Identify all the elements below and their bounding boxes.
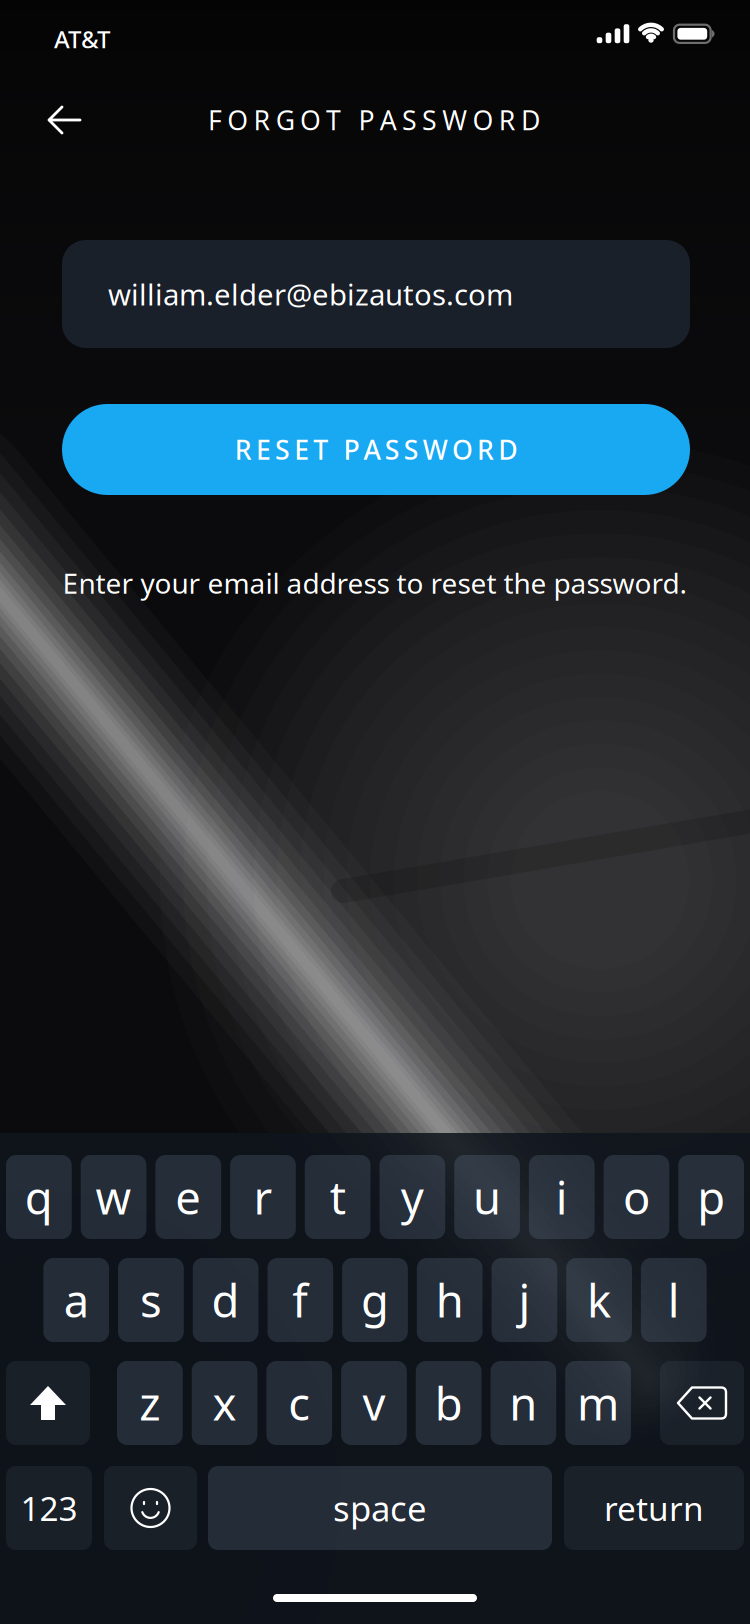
staticText: j (518, 1270, 530, 1330)
button[interactable]: space (208, 1466, 552, 1550)
staticText: T (313, 432, 328, 467)
staticText: a (64, 1270, 89, 1330)
staticText: k (587, 1270, 611, 1330)
staticText: R (499, 102, 516, 138)
staticText: E (256, 432, 271, 467)
button[interactable]: t (305, 1155, 370, 1239)
button[interactable]: a (43, 1258, 109, 1342)
button[interactable]: g (342, 1258, 408, 1342)
button[interactable]: Emoji (104, 1466, 197, 1550)
staticText: P (358, 102, 374, 138)
staticText: l (668, 1270, 680, 1330)
button[interactable]: w (81, 1155, 146, 1239)
staticText: G (276, 102, 295, 138)
staticText: A (363, 432, 380, 467)
staticText: 123 (20, 1486, 77, 1530)
staticText: O (472, 102, 493, 138)
button[interactable]: Shift (6, 1361, 90, 1445)
staticText: n (509, 1373, 537, 1433)
staticText: y (401, 1167, 424, 1227)
staticText: d (212, 1270, 240, 1330)
staticText: z (139, 1373, 160, 1433)
staticText: q (25, 1167, 53, 1227)
staticText: g (361, 1270, 389, 1330)
staticText: W (423, 432, 448, 467)
staticText: return (604, 1486, 704, 1530)
staticText: w (96, 1167, 132, 1227)
button[interactable]: d (193, 1258, 258, 1342)
staticText: p (697, 1167, 725, 1227)
staticText: E (294, 432, 309, 467)
staticText: S (402, 102, 417, 138)
staticText: s (140, 1270, 162, 1330)
staticText: O (452, 432, 473, 467)
staticText: T (326, 102, 341, 138)
staticText: D (498, 432, 517, 467)
button[interactable]: o (604, 1155, 669, 1239)
button[interactable]: c (266, 1361, 332, 1445)
staticText: x (213, 1373, 237, 1433)
staticText: S (404, 432, 419, 467)
button[interactable]: j (492, 1258, 557, 1342)
button[interactable]: q (6, 1155, 72, 1239)
staticText: h (436, 1270, 464, 1330)
staticText: o (623, 1167, 650, 1227)
button[interactable]: x (192, 1361, 257, 1445)
staticText: e (175, 1167, 201, 1227)
button[interactable]: return (564, 1466, 744, 1550)
staticText: r (253, 1167, 272, 1227)
staticText: D (521, 102, 540, 138)
button[interactable]: h (417, 1258, 482, 1342)
button[interactable]: u (454, 1155, 520, 1239)
button[interactable]: i (529, 1155, 595, 1239)
staticText: O (300, 102, 321, 138)
button[interactable]: Delete (660, 1361, 744, 1445)
staticText: S (385, 432, 400, 467)
button[interactable]: k (566, 1258, 632, 1342)
staticText: i (556, 1167, 568, 1227)
button[interactable]: william.elder@ebizautos.com (62, 240, 690, 348)
staticText: R (235, 432, 252, 467)
staticText: P (343, 432, 359, 467)
staticText: W (442, 102, 467, 138)
button[interactable]: Back (35, 91, 94, 149)
staticText: space (333, 1485, 427, 1531)
button[interactable]: Numbers (6, 1466, 92, 1550)
staticText: f (292, 1270, 308, 1330)
staticText: c (288, 1373, 310, 1433)
staticText: F (208, 102, 222, 138)
staticText: u (473, 1167, 501, 1227)
button[interactable]: v (341, 1361, 407, 1445)
staticText: S (275, 432, 290, 467)
staticText: m (577, 1373, 619, 1433)
staticText: R (253, 102, 270, 138)
button[interactable]: s (118, 1258, 184, 1342)
staticText: O (227, 102, 248, 138)
staticText: AT&T (54, 23, 110, 55)
staticText: Enter your email address to reset the pa… (62, 564, 687, 602)
staticText: R (477, 432, 494, 467)
staticText: A (380, 102, 397, 138)
button[interactable]: y (379, 1155, 445, 1239)
button[interactable]: e (155, 1155, 221, 1239)
button[interactable]: n (490, 1361, 556, 1445)
button[interactable]: m (565, 1361, 631, 1445)
button[interactable]: R (62, 404, 690, 495)
staticText: v (362, 1373, 385, 1433)
button[interactable]: l (641, 1258, 707, 1342)
button[interactable]: f (267, 1258, 333, 1342)
staticText: william.elder@ebizautos.com (108, 274, 513, 313)
staticText: t (330, 1167, 346, 1227)
button[interactable]: p (678, 1155, 744, 1239)
button[interactable]: b (416, 1361, 481, 1445)
button[interactable]: r (230, 1155, 296, 1239)
staticText: S (422, 102, 437, 138)
staticText: b (435, 1373, 463, 1433)
button[interactable]: z (117, 1361, 183, 1445)
